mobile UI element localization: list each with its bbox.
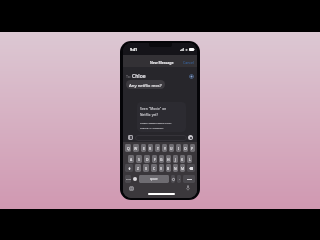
button[interactable]: I (176, 144, 181, 152)
staticText: H (167, 157, 170, 162)
button[interactable]: L (187, 155, 192, 163)
button[interactable]: M (180, 164, 185, 172)
button[interactable]: Emoji (133, 177, 137, 181)
staticText: G (160, 157, 163, 162)
button[interactable]: Z (135, 164, 141, 172)
button[interactable]: Cancel (179, 57, 197, 68)
staticText: X (145, 166, 147, 171)
staticText: P (191, 146, 194, 151)
staticText: Seen "Movie" on Netflix yet? (140, 107, 167, 117)
button[interactable]: Backspace (187, 164, 195, 172)
button[interactable]: Record audio (188, 135, 193, 140)
staticText: W (134, 146, 138, 151)
staticText: To: (126, 74, 132, 79)
button[interactable]: W (133, 144, 139, 152)
staticText: C (153, 166, 156, 171)
button[interactable]: Enter (183, 175, 195, 183)
button[interactable]: D (144, 155, 150, 163)
staticText: K (181, 157, 184, 162)
button[interactable]: F (152, 155, 157, 163)
button[interactable]: X (143, 164, 149, 172)
button[interactable]: N (173, 164, 178, 172)
staticText: 9:41 (130, 47, 138, 52)
button[interactable]: Symbols (125, 175, 131, 183)
staticText: R (149, 146, 152, 151)
button[interactable]: O (183, 144, 188, 152)
button[interactable]: V (159, 164, 164, 172)
button[interactable]: S (136, 155, 142, 163)
staticText: . (179, 177, 180, 181)
button[interactable]: Seen "Movie" on Netflix yet? (137, 102, 186, 132)
button[interactable]: K (180, 155, 185, 163)
button[interactable]: space (139, 175, 169, 183)
staticText: N (174, 166, 177, 171)
button[interactable]: Apps (128, 135, 133, 140)
button[interactable]: Q (125, 144, 131, 152)
staticText: https://www.netflix.com/ clips/811133984… (140, 121, 172, 129)
staticText: Any netflix recs? (129, 82, 162, 88)
staticText: F (154, 157, 156, 162)
button[interactable]: C (151, 164, 157, 172)
button[interactable]: B (166, 164, 171, 172)
staticText: Cancel (183, 60, 194, 65)
button[interactable]: Settings (171, 175, 175, 183)
button[interactable]: J (173, 155, 178, 163)
staticText: S (138, 157, 140, 162)
button[interactable]: G (159, 155, 164, 163)
staticText: M (181, 166, 185, 171)
staticText: Y (164, 146, 166, 151)
staticText: T (157, 146, 159, 151)
button[interactable]: Period (177, 175, 181, 183)
staticText: ?123 (126, 178, 131, 181)
button[interactable]: Y (162, 144, 167, 152)
button[interactable]: Change language (129, 186, 134, 191)
button[interactable]: H (166, 155, 171, 163)
staticText: Q (127, 146, 130, 151)
staticText: J (175, 157, 176, 162)
staticText: Z (137, 166, 139, 171)
staticText: U (170, 146, 173, 151)
button[interactable]: T (155, 144, 160, 152)
staticText: E (143, 146, 145, 151)
button[interactable]: U (169, 144, 174, 152)
staticText: O (184, 146, 187, 151)
button[interactable]: P (190, 144, 195, 152)
staticText: I (178, 146, 180, 151)
button[interactable]: Shift (125, 164, 133, 172)
button[interactable]: Voice input (186, 185, 190, 191)
staticText: D (146, 157, 149, 162)
button[interactable]: Add contact (189, 74, 194, 79)
staticText: Chloe (132, 73, 146, 80)
staticText: New Message (150, 60, 174, 65)
staticText: B (167, 166, 170, 171)
button[interactable]: Any netflix recs? (126, 80, 165, 89)
staticText: A (130, 157, 133, 162)
staticText: V (160, 166, 163, 171)
button[interactable]: E (141, 144, 146, 152)
button[interactable]: R (148, 144, 153, 152)
button[interactable] (135, 135, 187, 141)
staticText: L (189, 157, 191, 162)
staticText: space (150, 177, 158, 181)
button[interactable]: A (128, 155, 134, 163)
